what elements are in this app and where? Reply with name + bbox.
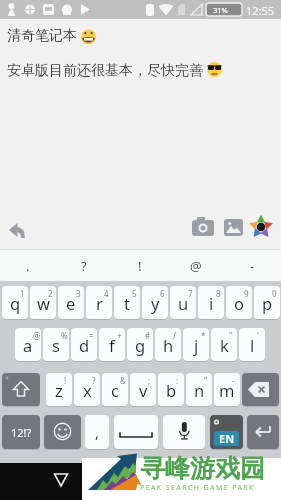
button[interactable]: n bbox=[186, 373, 212, 406]
staticText: h bbox=[163, 334, 174, 356]
staticText: q bbox=[10, 292, 21, 314]
staticText: * bbox=[201, 330, 206, 341]
staticText: 寻峰游戏园 bbox=[140, 453, 265, 484]
button[interactable]: a bbox=[15, 328, 41, 361]
button[interactable]: . bbox=[0, 250, 56, 281]
staticText: 6 bbox=[160, 288, 165, 299]
button[interactable] bbox=[2, 373, 40, 406]
staticText: c bbox=[111, 379, 119, 401]
button[interactable]: x bbox=[74, 373, 100, 406]
staticText: v bbox=[139, 379, 148, 401]
staticText: PEAK SEARCH GAME PARK bbox=[140, 483, 255, 493]
staticText: g bbox=[135, 334, 146, 356]
button[interactable]: v bbox=[130, 373, 156, 406]
staticText: k bbox=[220, 334, 229, 356]
staticText: x bbox=[83, 379, 92, 401]
staticText: : bbox=[176, 375, 179, 386]
button[interactable]: l bbox=[239, 328, 265, 361]
button[interactable]: t bbox=[114, 286, 140, 319]
staticText: t bbox=[124, 292, 130, 314]
staticText: 3 bbox=[76, 288, 81, 299]
staticText: + bbox=[117, 330, 122, 341]
staticText: , bbox=[95, 422, 100, 442]
staticText: p bbox=[262, 292, 273, 314]
staticText: d bbox=[79, 334, 90, 356]
button[interactable]: e bbox=[58, 286, 84, 319]
button[interactable]: y bbox=[142, 286, 168, 319]
button[interactable]: p bbox=[254, 286, 280, 319]
button[interactable] bbox=[44, 415, 81, 449]
button[interactable]: s bbox=[43, 328, 69, 361]
staticText: @ bbox=[33, 330, 41, 341]
staticText: i bbox=[209, 292, 214, 314]
staticText: EN bbox=[219, 431, 235, 446]
staticText: a bbox=[23, 334, 33, 356]
staticText: & bbox=[120, 375, 126, 386]
staticText: f bbox=[109, 334, 115, 356]
staticText: - bbox=[232, 375, 235, 386]
staticText: u bbox=[178, 292, 189, 314]
button[interactable] bbox=[163, 415, 205, 449]
button[interactable]: @ bbox=[168, 250, 224, 281]
button[interactable]: k bbox=[211, 328, 237, 361]
button[interactable] bbox=[242, 373, 279, 406]
staticText: 8 bbox=[216, 288, 221, 299]
staticText: @ bbox=[190, 257, 202, 275]
button[interactable]: ? bbox=[56, 250, 112, 281]
button[interactable]: m bbox=[214, 373, 240, 406]
staticText: % bbox=[61, 330, 68, 341]
button[interactable]: 12!? bbox=[2, 415, 40, 449]
staticText: z bbox=[55, 379, 63, 401]
staticText: j bbox=[194, 334, 199, 356]
staticText: " bbox=[204, 375, 208, 386]
staticText: b bbox=[166, 379, 177, 401]
staticText: o bbox=[234, 292, 244, 314]
staticText: ! bbox=[64, 375, 67, 386]
button[interactable]: f bbox=[99, 328, 125, 361]
staticText: 5 bbox=[132, 288, 137, 299]
button[interactable]: ! bbox=[112, 250, 168, 281]
staticText: ! bbox=[138, 257, 142, 275]
button[interactable]: q bbox=[2, 286, 28, 319]
button[interactable]: - bbox=[224, 250, 280, 281]
button[interactable]: g bbox=[127, 328, 153, 361]
staticText: 4 bbox=[104, 288, 109, 299]
button[interactable]: h bbox=[155, 328, 181, 361]
staticText: 0 bbox=[272, 288, 277, 299]
button[interactable]: o bbox=[226, 286, 252, 319]
staticText: - bbox=[250, 257, 255, 275]
button[interactable]: z bbox=[46, 373, 72, 406]
staticText: 1 bbox=[20, 288, 25, 299]
staticText: e bbox=[66, 292, 76, 314]
button[interactable] bbox=[247, 415, 279, 449]
button[interactable]: u bbox=[170, 286, 196, 319]
staticText: ? bbox=[92, 375, 96, 386]
button[interactable]: w bbox=[30, 286, 56, 319]
button[interactable] bbox=[114, 415, 158, 449]
button[interactable]: c bbox=[102, 373, 128, 406]
staticText: 12!? bbox=[11, 425, 32, 440]
button[interactable]: r bbox=[86, 286, 112, 319]
button[interactable]: , bbox=[85, 415, 109, 449]
staticText: 31% bbox=[213, 5, 228, 15]
staticText: w bbox=[37, 292, 50, 314]
staticText: 7 bbox=[188, 288, 193, 299]
staticText: ; bbox=[148, 375, 151, 386]
staticText: / bbox=[173, 330, 176, 341]
button[interactable]: d bbox=[71, 328, 97, 361]
staticText: " bbox=[229, 330, 233, 341]
button[interactable] bbox=[210, 415, 243, 449]
staticText: l bbox=[250, 334, 255, 356]
staticText: s bbox=[52, 334, 60, 356]
staticText: r bbox=[96, 292, 103, 314]
staticText: # bbox=[145, 330, 151, 341]
staticText: y bbox=[151, 292, 160, 314]
staticText: 2 bbox=[48, 288, 53, 299]
staticText: 清奇笔记本 bbox=[7, 27, 77, 45]
staticText: 9 bbox=[244, 288, 249, 299]
button[interactable]: i bbox=[198, 286, 224, 319]
button[interactable]: b bbox=[158, 373, 184, 406]
staticText: ' bbox=[257, 330, 259, 341]
button[interactable]: j bbox=[183, 328, 209, 361]
button[interactable] bbox=[0, 463, 281, 500]
